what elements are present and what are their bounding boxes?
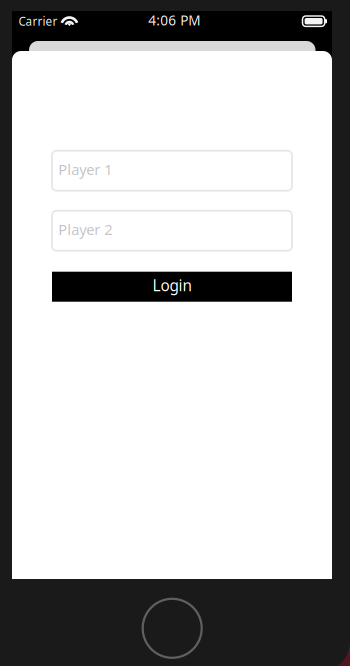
button[interactable]: Login <box>52 272 292 302</box>
button[interactable]: Player 2 <box>52 211 292 251</box>
button[interactable]: Player 1 <box>52 151 292 191</box>
staticText: 4:06 PM <box>148 11 200 29</box>
staticText: Carrier <box>19 13 58 29</box>
staticText: Login <box>152 275 191 296</box>
button[interactable]: Home <box>143 599 202 658</box>
staticText: Player 2 <box>58 219 112 239</box>
staticText: Player 1 <box>58 159 112 179</box>
